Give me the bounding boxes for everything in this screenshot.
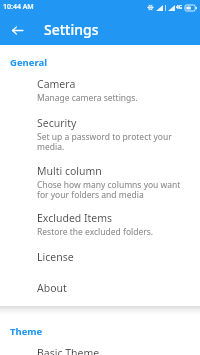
staticText: About: [37, 281, 67, 295]
button[interactable]: Basic Theme: [0, 346, 200, 355]
button[interactable]: Security: [0, 116, 200, 152]
staticText: 10:44 AM: [3, 2, 34, 12]
staticText: Theme: [10, 325, 43, 338]
staticText: Excluded Items: [37, 211, 113, 225]
button[interactable]: Back: [5, 18, 29, 42]
staticText: Settings: [44, 20, 99, 39]
staticText: Manage camera settings.: [37, 92, 138, 104]
button[interactable]: General: [0, 56, 200, 70]
button[interactable]: Camera: [0, 77, 200, 104]
button[interactable]: About: [0, 281, 200, 295]
button[interactable]: Theme: [0, 325, 200, 339]
button[interactable]: Excluded Items: [0, 211, 200, 238]
staticText: Set up a password to protect your media.: [37, 131, 192, 152]
staticText: Multi column: [37, 164, 102, 178]
staticText: 4G: [176, 4, 183, 11]
staticText: Security: [37, 116, 77, 130]
staticText: Basic Theme: [37, 346, 100, 355]
button[interactable]: License: [0, 250, 200, 264]
staticText: Camera: [37, 77, 76, 91]
staticText: Restore the excluded folders.: [37, 226, 154, 238]
staticText: General: [10, 56, 47, 69]
staticText: License: [37, 250, 74, 264]
button[interactable]: Multi column: [0, 164, 200, 200]
staticText: Chose how many columns you want for your…: [37, 179, 192, 200]
